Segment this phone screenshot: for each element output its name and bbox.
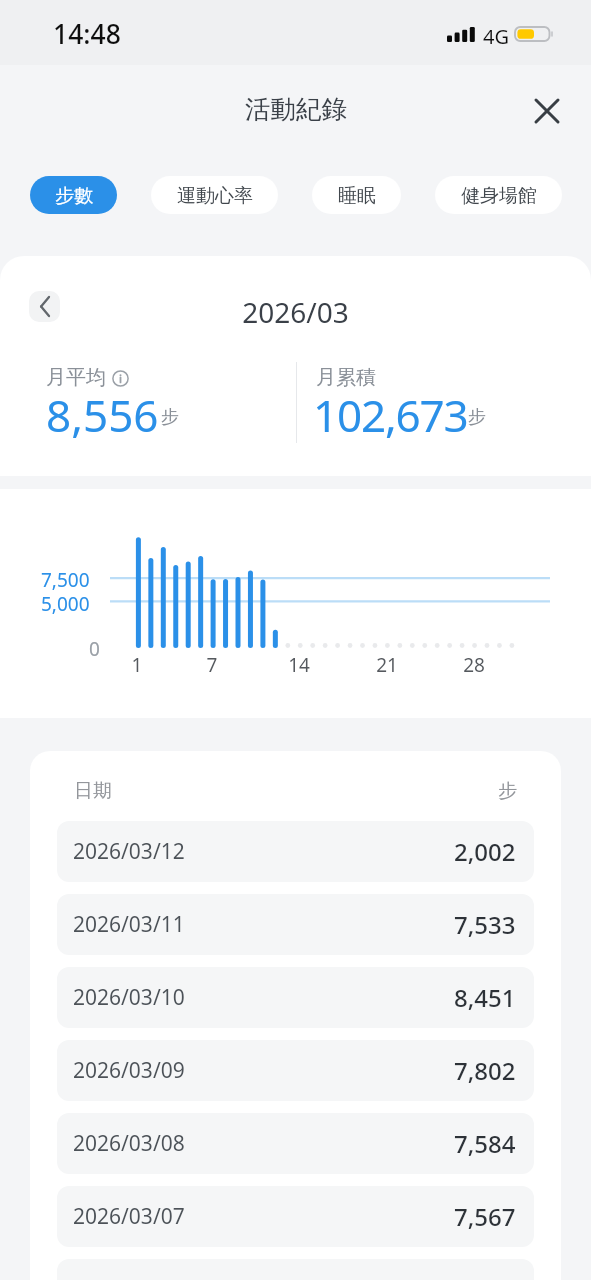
staticText: 102,673 <box>313 385 468 445</box>
staticText: 2026/03/07 <box>73 1202 185 1231</box>
staticText: 2026/03/09 <box>73 1056 185 1085</box>
button[interactable]: 運動心率 <box>151 176 278 214</box>
staticText: 運動心率 <box>177 184 253 208</box>
button[interactable]: 2026/03/07 <box>57 1186 534 1247</box>
staticText: 日期 <box>74 779 112 803</box>
staticText: 8,556 <box>46 385 159 445</box>
staticText: 2,002 <box>454 835 516 868</box>
button[interactable]: 健身場館 <box>435 176 562 214</box>
staticText: 7,802 <box>454 1054 516 1087</box>
staticText: 0 <box>89 636 100 662</box>
staticText: 月累積 <box>316 365 376 390</box>
staticText: 7,584 <box>454 1127 516 1160</box>
staticText: 14 <box>279 652 319 678</box>
button[interactable]: 睡眠 <box>312 176 401 214</box>
staticText: 7,500 <box>41 567 90 593</box>
staticText: 8,451 <box>454 981 516 1014</box>
staticText: 活動紀錄 <box>245 93 347 125</box>
staticText: 2026/03 <box>0 293 591 331</box>
staticText: 28 <box>454 652 494 678</box>
staticText: 2026/03/11 <box>73 910 185 939</box>
staticText: 步 <box>468 406 486 429</box>
staticText: 7,567 <box>454 1200 516 1233</box>
button[interactable]: Close <box>523 87 571 135</box>
button[interactable]: 2026/03/12 <box>57 821 534 882</box>
button[interactable]: Previous month <box>29 291 60 322</box>
staticText: 21 <box>367 652 407 678</box>
staticText: 步 <box>498 779 517 803</box>
staticText: 14:48 <box>53 16 121 52</box>
staticText: 步數 <box>55 184 93 208</box>
staticText: 7 <box>192 652 232 678</box>
button[interactable]: 2026/03/11 <box>57 894 534 955</box>
staticText: 2026/03/10 <box>73 983 185 1012</box>
button[interactable]: 2026/03/08 <box>57 1113 534 1174</box>
staticText: 健身場館 <box>461 184 537 208</box>
button[interactable]: 2026/03/10 <box>57 967 534 1028</box>
button[interactable]: 步數 <box>30 176 117 214</box>
staticText: 4G <box>483 23 509 50</box>
staticText: 2026/03/12 <box>73 837 185 866</box>
staticText: 睡眠 <box>338 184 376 208</box>
staticText: 步 <box>161 406 179 429</box>
button[interactable]: 2026/03/09 <box>57 1040 534 1101</box>
staticText: 7,533 <box>454 908 516 941</box>
staticText: 1 <box>117 652 157 678</box>
staticText: 月平均 <box>46 365 106 390</box>
staticText: 5,000 <box>41 591 90 617</box>
staticText: 2026/03/08 <box>73 1129 185 1158</box>
